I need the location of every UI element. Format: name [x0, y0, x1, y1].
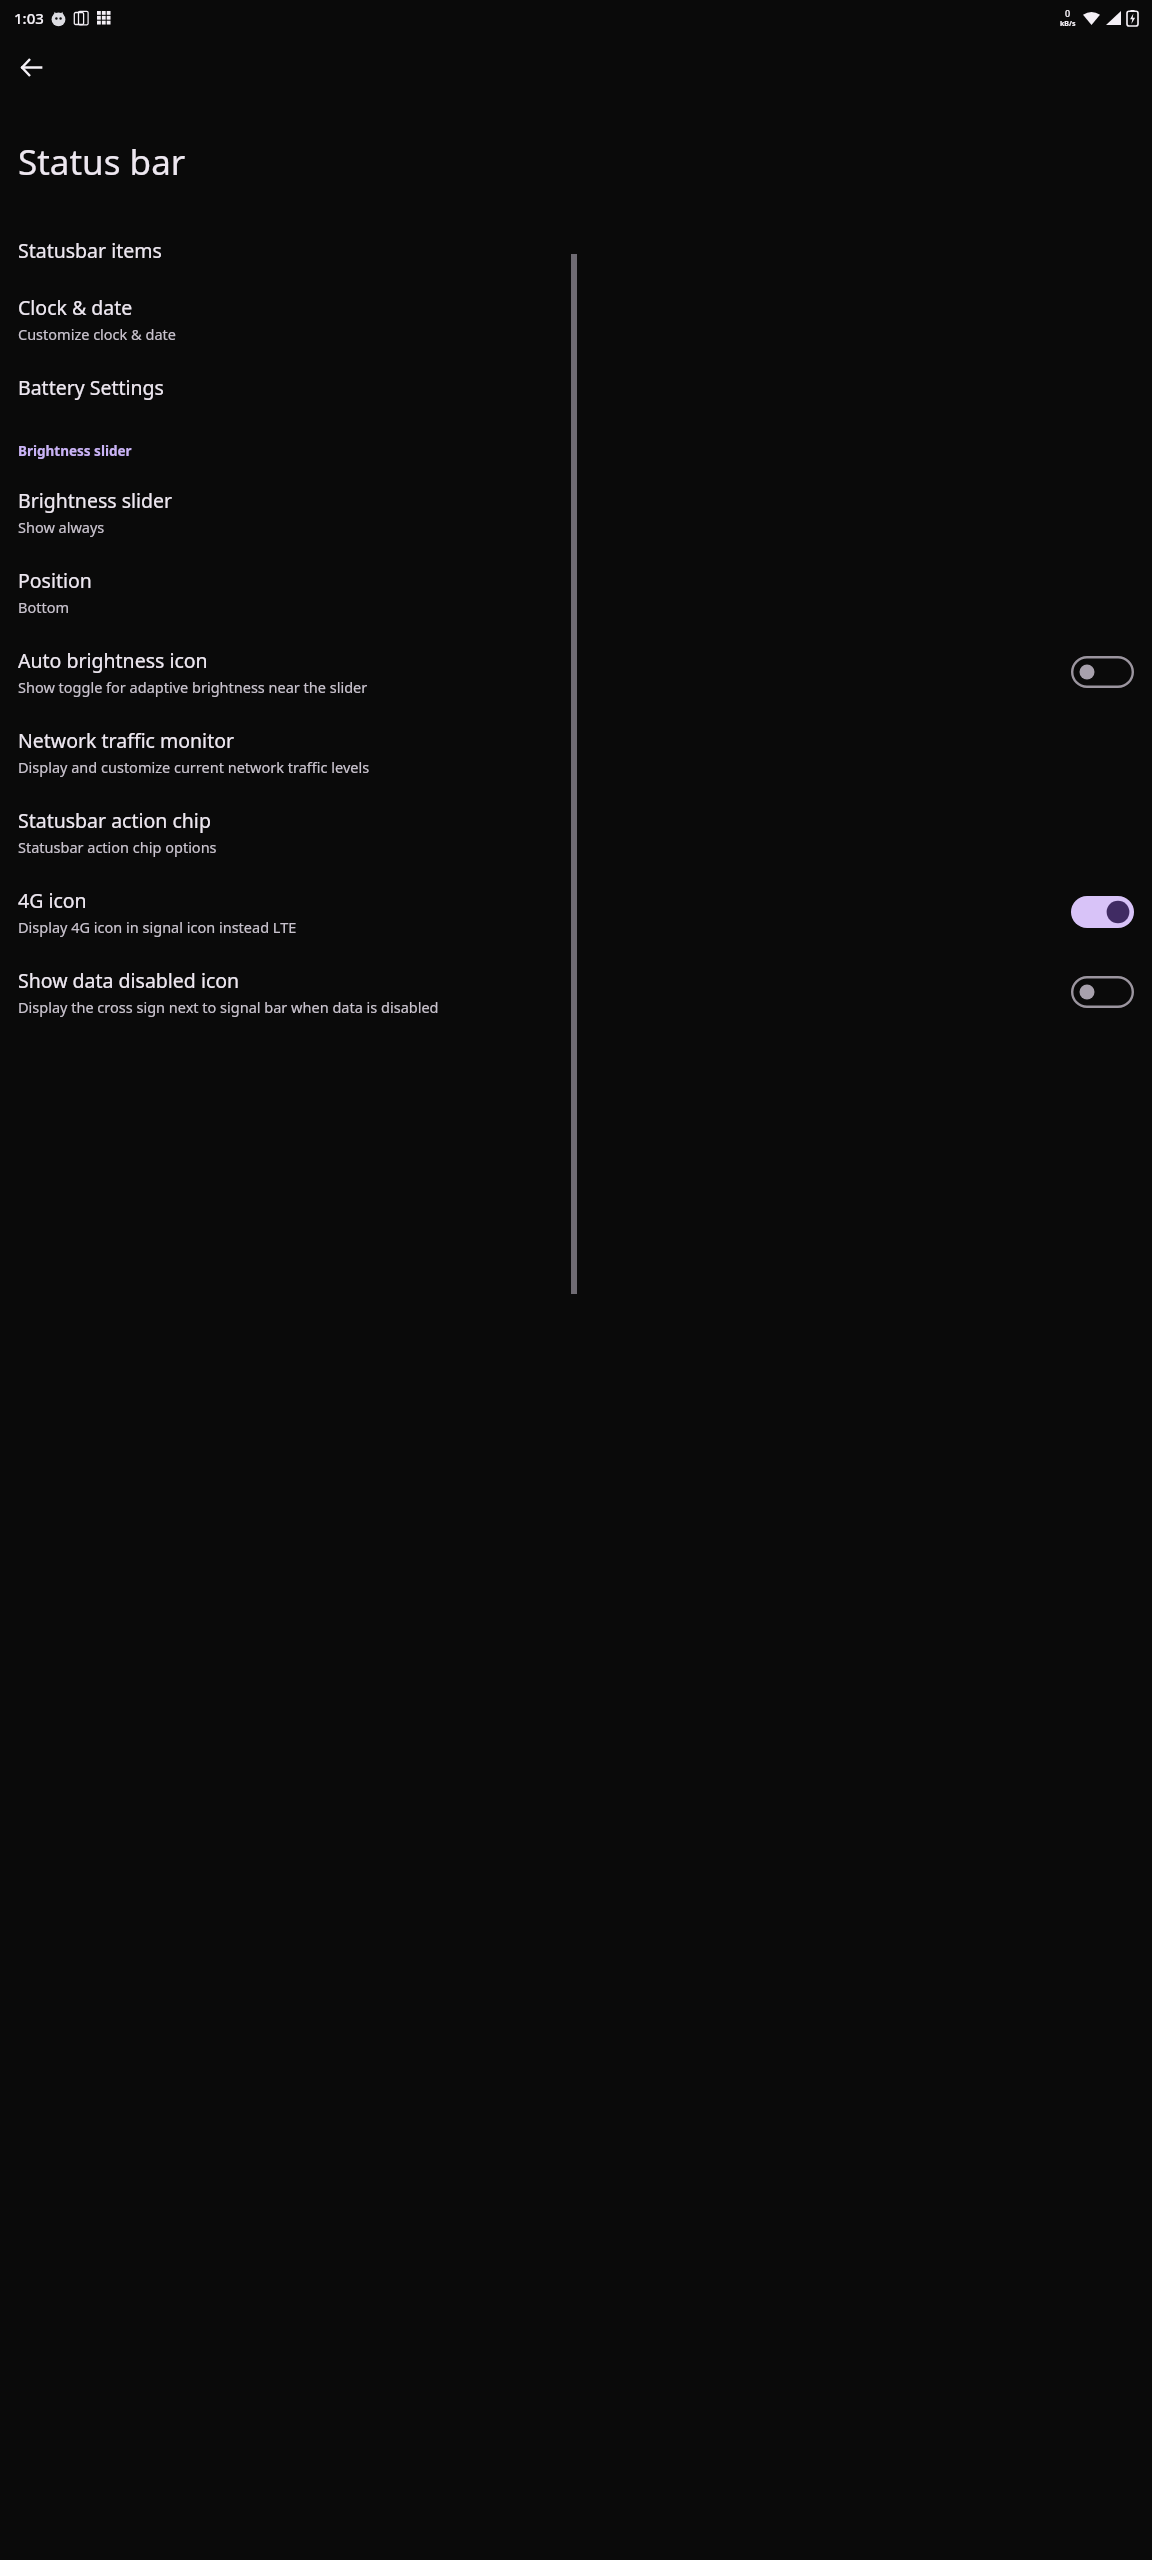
button[interactable]: Battery Settings	[0, 359, 1152, 416]
button[interactable]: Show data disabled icon	[0, 952, 1152, 1032]
staticText: Clock & date	[18, 294, 133, 321]
staticText: Statusbar action chip	[18, 807, 211, 834]
staticText: Statusbar items	[18, 237, 162, 264]
staticText: Show data disabled icon	[18, 967, 240, 994]
staticText: Statusbar action chip options	[18, 837, 217, 857]
staticText: Display and customize current network tr…	[18, 757, 370, 777]
staticText: Network traffic monitor	[18, 727, 235, 754]
staticText: Brightness slider	[18, 442, 132, 460]
button[interactable]: 4G icon	[0, 872, 1152, 952]
staticText: Show toggle for adaptive brightness near…	[18, 677, 368, 697]
staticText: Status bar	[18, 138, 186, 186]
staticText: Brightness slider	[18, 487, 173, 514]
staticText: Bottom	[18, 597, 69, 617]
staticText: 0	[1065, 7, 1071, 19]
button[interactable]: Toggle off	[1071, 656, 1134, 688]
button[interactable]: Statusbar items	[0, 222, 1152, 279]
button[interactable]: Network traffic monitor	[0, 712, 1152, 792]
staticText: Show always	[18, 517, 105, 537]
staticText: Position	[18, 567, 92, 594]
staticText: Display 4G icon in signal icon instead L…	[18, 917, 297, 937]
button[interactable]: Clock & date	[0, 279, 1152, 359]
button[interactable]: Brightness slider	[0, 472, 1152, 552]
staticText: kB/s	[1060, 19, 1076, 29]
button[interactable]: Statusbar action chip	[0, 792, 1152, 872]
staticText: Display the cross sign next to signal ba…	[18, 997, 439, 1017]
button[interactable]: Auto brightness icon	[0, 632, 1152, 712]
button[interactable]: Toggle on	[1071, 896, 1134, 928]
staticText: Battery Settings	[18, 374, 164, 401]
staticText: 4G icon	[18, 887, 87, 914]
staticText: 1:03	[14, 8, 44, 28]
button[interactable]: Toggle off	[1071, 976, 1134, 1008]
button[interactable]: Back	[8, 44, 54, 90]
button[interactable]: Position	[0, 552, 1152, 632]
staticText: Customize clock & date	[18, 324, 176, 344]
staticText: Auto brightness icon	[18, 647, 208, 674]
